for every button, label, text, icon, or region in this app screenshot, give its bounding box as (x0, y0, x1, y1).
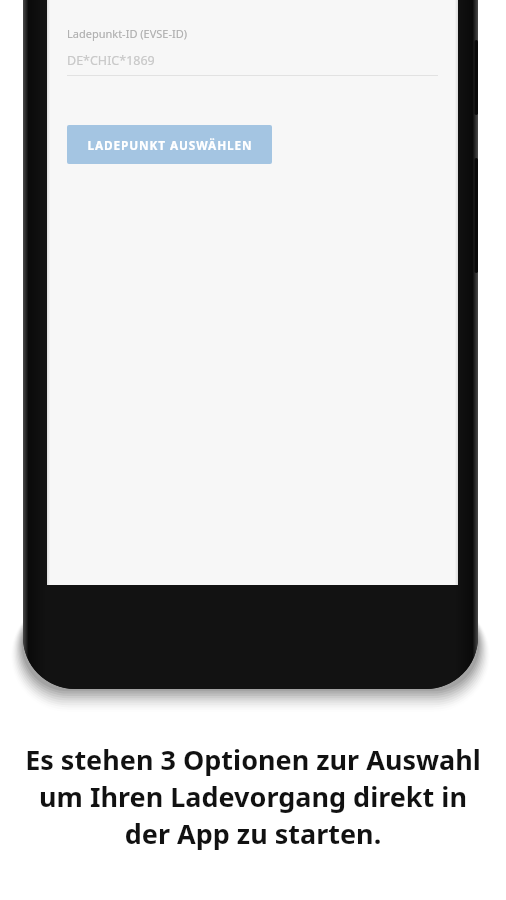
staticText: Es stehen 3 Optionen zur Auswahl um Ihre… (14, 741, 492, 852)
staticText: DE*CHIC*1869 (67, 52, 155, 69)
other: Hardware buttons (23, 0, 478, 689)
button[interactable]: Ladepunkt-ID (EVSE-ID) (67, 26, 438, 76)
staticText: LADEPUNKT AUSWÄHLEN (87, 137, 253, 153)
button[interactable]: LADEPUNKT AUSWÄHLEN (67, 125, 272, 164)
staticText: Ladepunkt-ID (EVSE-ID) (67, 26, 188, 41)
